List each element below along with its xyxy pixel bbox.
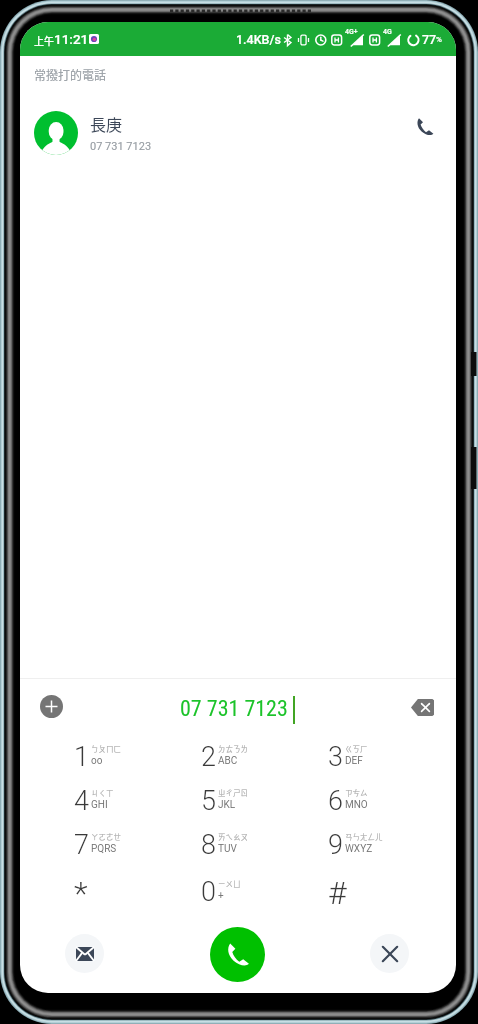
button[interactable]: 0 xyxy=(161,870,281,914)
staticText: ABC xyxy=(218,755,238,767)
button[interactable]: 8 xyxy=(161,823,281,867)
button[interactable]: Add contact xyxy=(40,695,63,718)
staticText: * xyxy=(74,874,88,912)
button[interactable]: 6 xyxy=(288,779,408,823)
button[interactable]: * xyxy=(34,870,154,914)
button[interactable]: Close dialpad xyxy=(370,934,409,973)
staticText: % xyxy=(436,35,442,44)
button[interactable]: 長庚 xyxy=(20,103,456,163)
button[interactable]: Send message xyxy=(65,934,104,973)
staticText: ㄚㄛㄜㄝ xyxy=(91,831,121,842)
staticText: ㄉㄊㄋㄌ xyxy=(218,743,248,754)
staticText: ㄢㄣㄤㄥㄦ xyxy=(345,831,383,842)
staticText: 2 xyxy=(201,741,216,773)
staticText: GHI xyxy=(91,799,108,811)
staticText: ㄓㄔㄕㄖ xyxy=(218,787,248,798)
staticText: ㄐㄑㄒ xyxy=(91,787,114,798)
staticText: ㄞㄟㄠㄡ xyxy=(218,831,248,842)
staticText: ㄗㄘㄙ xyxy=(345,787,368,798)
button[interactable]: 2 xyxy=(161,735,281,779)
button[interactable]: 4 xyxy=(34,779,154,823)
staticText: 0 xyxy=(201,876,216,908)
staticText: MNO xyxy=(345,799,368,811)
staticText: + xyxy=(218,890,224,902)
staticText: 常撥打的電話 xyxy=(34,66,107,83)
staticText: ㄅㄆㄇㄈ xyxy=(91,743,121,754)
button[interactable]: 1 xyxy=(34,735,154,779)
staticText: 77 xyxy=(422,32,437,47)
staticText: ㄍㄎㄏ xyxy=(345,743,368,754)
button[interactable]: # xyxy=(288,870,408,914)
staticText: JKL xyxy=(218,799,236,811)
button[interactable]: 9 xyxy=(288,823,408,867)
button[interactable]: 7 xyxy=(34,823,154,867)
staticText: oo xyxy=(91,755,103,767)
button[interactable]: 3 xyxy=(288,735,408,779)
staticText: 長庚 xyxy=(90,112,123,135)
staticText: # xyxy=(328,874,347,912)
staticText: 4 xyxy=(74,785,89,817)
staticText: 07 731 7123 xyxy=(90,140,152,153)
button[interactable]: Call xyxy=(210,927,265,982)
staticText: 11:21 xyxy=(54,31,89,47)
staticText: TUV xyxy=(218,843,237,855)
button[interactable]: Call contact xyxy=(403,105,447,149)
staticText: 1.4KB/s xyxy=(236,32,281,47)
staticText: 4G+ xyxy=(345,28,358,36)
staticText: 8 xyxy=(201,829,216,861)
staticText: 3 xyxy=(328,741,343,773)
staticText: 9 xyxy=(328,829,343,861)
staticText: ㄧㄨㄩ xyxy=(218,878,241,889)
staticText: 6 xyxy=(328,785,343,817)
staticText: WXYZ xyxy=(345,843,373,855)
staticText: 7 xyxy=(74,829,89,861)
staticText: DEF xyxy=(345,755,363,767)
button[interactable]: Backspace xyxy=(411,699,434,716)
staticText: PQRS xyxy=(91,843,117,855)
button[interactable]: 5 xyxy=(161,779,281,823)
staticText: 5 xyxy=(201,785,216,817)
staticText: 07 731 7123 xyxy=(180,696,288,722)
staticText: 4G xyxy=(383,28,392,36)
staticText: 1 xyxy=(74,741,89,773)
staticText: 上午 xyxy=(34,33,54,47)
